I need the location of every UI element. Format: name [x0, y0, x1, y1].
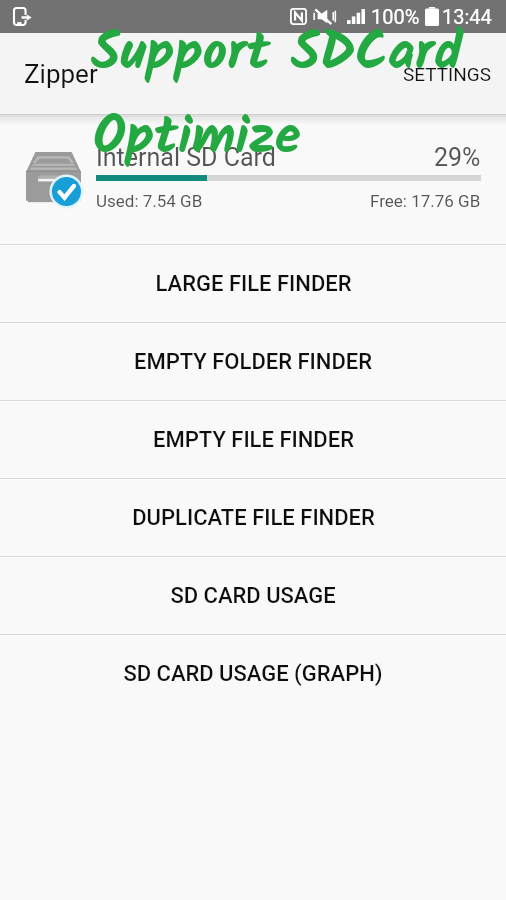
- button[interactable]: Internal SD Card: [0, 118, 506, 244]
- staticText: DUPLICATE FILE FINDER: [132, 505, 375, 531]
- staticText: Internal SD Card: [96, 143, 276, 172]
- staticText: 29%: [434, 143, 481, 172]
- staticText: SD CARD USAGE (GRAPH): [123, 661, 383, 687]
- staticText: SETTINGS: [403, 63, 492, 85]
- button[interactable]: DUPLICATE FILE FINDER: [0, 479, 506, 556]
- staticText: EMPTY FOLDER FINDER: [134, 349, 372, 375]
- staticText: Optimize: [93, 97, 301, 181]
- other: Cast screen: [13, 7, 32, 26]
- staticText: Used: 7.54 GB: [96, 191, 203, 211]
- staticText: SD CARD USAGE: [170, 583, 336, 609]
- staticText: 100%: [371, 5, 420, 28]
- staticText: Support SDCard: [91, 13, 463, 97]
- button[interactable]: EMPTY FOLDER FINDER: [0, 323, 506, 400]
- staticText: Free: 17.76 GB: [370, 191, 481, 211]
- staticText: 13:44: [442, 5, 492, 28]
- staticText: Zipper: [24, 59, 98, 89]
- staticText: EMPTY FILE FINDER: [153, 427, 354, 453]
- button[interactable]: SETTINGS: [389, 45, 506, 103]
- button[interactable]: SD CARD USAGE (GRAPH): [0, 635, 506, 712]
- staticText: LARGE FILE FINDER: [155, 271, 352, 297]
- button[interactable]: SD CARD USAGE: [0, 557, 506, 634]
- other: Internal SD Card: [26, 147, 81, 203]
- button[interactable]: EMPTY FILE FINDER: [0, 401, 506, 478]
- button[interactable]: LARGE FILE FINDER: [0, 245, 506, 322]
